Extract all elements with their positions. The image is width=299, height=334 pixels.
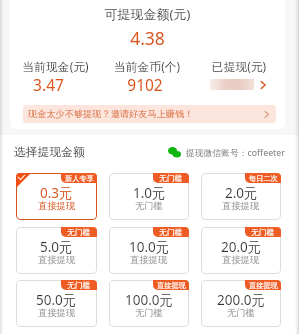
staticText: 3.47 [3, 74, 94, 95]
staticText: 1.0元 [133, 184, 166, 202]
staticText: 直接提现 [157, 281, 186, 290]
staticText: 20.0元 [221, 238, 262, 256]
staticText: 提现微信账号：coffeeter [186, 147, 285, 159]
staticText: 10.0元 [129, 238, 170, 256]
staticText: 无门槛 [159, 173, 183, 183]
staticText: 100.0元 [125, 291, 174, 309]
staticText: 每日二次 [249, 174, 278, 183]
button[interactable]: 现金太少不够提现？邀请好友马上赚钱！ [23, 105, 276, 123]
staticText: 50.0元 [36, 291, 77, 309]
staticText: 当前金币(个) [101, 58, 193, 74]
button[interactable]: 20.0元 [201, 227, 281, 274]
staticText: 选择提现金额 [14, 145, 85, 160]
button[interactable]: 200.0元 [201, 280, 281, 327]
staticText: 现金太少不够提现？邀请好友马上赚钱！ [28, 108, 194, 120]
staticText: 直接提现 [222, 200, 260, 212]
staticText: 直接提现 [38, 307, 76, 319]
button[interactable]: 10.0元 [109, 227, 189, 274]
staticText: 当前现金(元) [10, 58, 101, 74]
staticText: 无门槛 [227, 307, 255, 319]
staticText: 无门槛 [135, 200, 163, 212]
staticText: 5.0元 [40, 238, 73, 256]
staticText: 2.0元 [225, 184, 258, 202]
staticText: 直接提现 [130, 254, 168, 266]
button[interactable]: 1.0元 [109, 173, 189, 220]
staticText: 无门槛 [135, 307, 163, 319]
staticText: 直接提现 [38, 200, 76, 212]
staticText: 9102 [99, 74, 191, 95]
staticText: 直接提现 [222, 254, 260, 266]
staticText: 已提现(元) [193, 58, 285, 74]
staticText: 新人专享 [65, 174, 94, 183]
button[interactable]: 50.0元 [16, 280, 97, 327]
staticText: 无门槛 [251, 227, 275, 237]
staticText: 直接提现 [249, 281, 278, 290]
button[interactable]: 100.0元 [109, 280, 189, 327]
staticText: 无门槛 [67, 280, 91, 290]
button[interactable]: 0.3元 [16, 173, 97, 220]
button[interactable]: 已提现明细 [193, 79, 285, 90]
staticText: 200.0元 [217, 291, 266, 309]
staticText: 可提现金额(元) [10, 5, 285, 23]
staticText: 4.38 [10, 26, 285, 50]
staticText: 无门槛 [67, 227, 91, 237]
staticText: 直接提现 [38, 254, 76, 266]
staticText: 0.3元 [40, 184, 73, 202]
button[interactable]: 2.0元 [201, 173, 281, 220]
staticText: 无门槛 [159, 227, 183, 237]
button[interactable]: 5.0元 [16, 227, 97, 274]
